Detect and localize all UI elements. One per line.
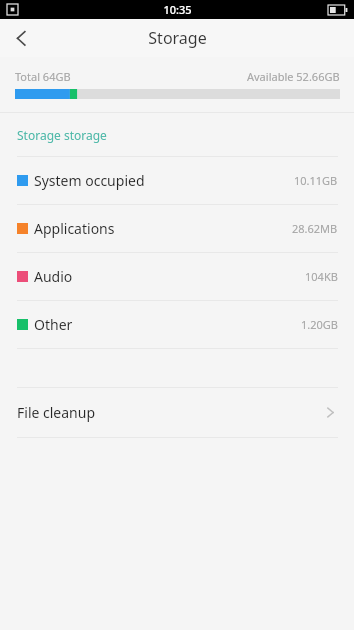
button[interactable]: Back bbox=[0, 19, 44, 57]
staticText: 10.11GB bbox=[294, 173, 338, 188]
staticText: Total 64GB bbox=[15, 69, 71, 84]
staticText: 10:35 bbox=[163, 2, 192, 17]
staticText: Applications bbox=[34, 219, 115, 238]
staticText: File cleanup bbox=[17, 403, 96, 422]
staticText: System occupied bbox=[34, 171, 145, 190]
button[interactable]: Audio bbox=[0, 253, 354, 300]
staticText: 28.62MB bbox=[292, 221, 338, 236]
staticText: Audio bbox=[34, 267, 73, 286]
staticText: Storage bbox=[148, 27, 207, 49]
button[interactable]: Other bbox=[0, 301, 354, 348]
button[interactable]: System occupied bbox=[0, 157, 354, 204]
staticText: Other bbox=[34, 315, 73, 334]
staticText: Storage storage bbox=[17, 127, 107, 143]
button[interactable]: File cleanup bbox=[0, 388, 354, 437]
staticText: 104KB bbox=[305, 269, 338, 284]
button[interactable]: Applications bbox=[0, 205, 354, 252]
staticText: Available 52.66GB bbox=[247, 69, 340, 84]
staticText: 1.20GB bbox=[301, 317, 338, 332]
